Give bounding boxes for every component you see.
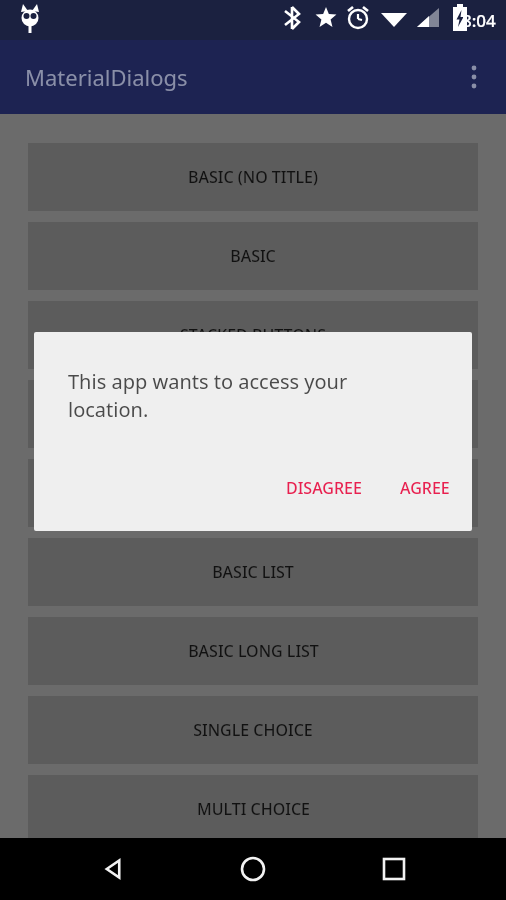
- staticText: BASIC LIST: [212, 561, 294, 583]
- staticText: BASIC LONG LIST: [188, 640, 319, 662]
- staticText: CUSTOM VIEW: [198, 482, 309, 504]
- staticText: INPUT: [229, 866, 278, 888]
- button[interactable]: DISAGREE: [270, 469, 378, 507]
- button[interactable]: Home: [225, 841, 281, 897]
- button[interactable]: Back: [85, 841, 141, 897]
- button[interactable]: STACKED BUTTONS: [28, 301, 478, 369]
- button[interactable]: MULTI CHOICE: [28, 775, 478, 843]
- staticText: AGREE: [400, 477, 450, 499]
- button[interactable]: BASIC: [28, 222, 478, 290]
- button[interactable]: BASIC LONG LIST: [28, 617, 478, 685]
- button[interactable]: SINGLE CHOICE: [28, 696, 478, 764]
- staticText: DISAGREE: [286, 477, 362, 499]
- staticText: SINGLE CHOICE: [193, 719, 313, 741]
- button[interactable]: BASIC (NO TITLE): [28, 143, 478, 211]
- staticText: BASIC (NO TITLE): [188, 166, 318, 188]
- button[interactable]: AGREE: [384, 469, 466, 507]
- button[interactable]: More options: [450, 53, 498, 101]
- button[interactable]: BASIC LIST: [28, 538, 478, 606]
- staticText: 8:04: [462, 9, 496, 32]
- staticText: This app wants to access your location.: [68, 368, 448, 423]
- button[interactable]: INPUT: [28, 854, 478, 900]
- staticText: MULTI CHOICE: [197, 798, 310, 820]
- button[interactable]: Recent apps: [366, 841, 422, 897]
- staticText: BASIC: [230, 245, 276, 267]
- button[interactable]: NEUTRAL BUTTON: [28, 380, 478, 448]
- staticText: STACKED BUTTONS: [180, 324, 326, 346]
- staticText: MaterialDialogs: [25, 62, 188, 92]
- button[interactable]: CUSTOM VIEW: [28, 459, 478, 527]
